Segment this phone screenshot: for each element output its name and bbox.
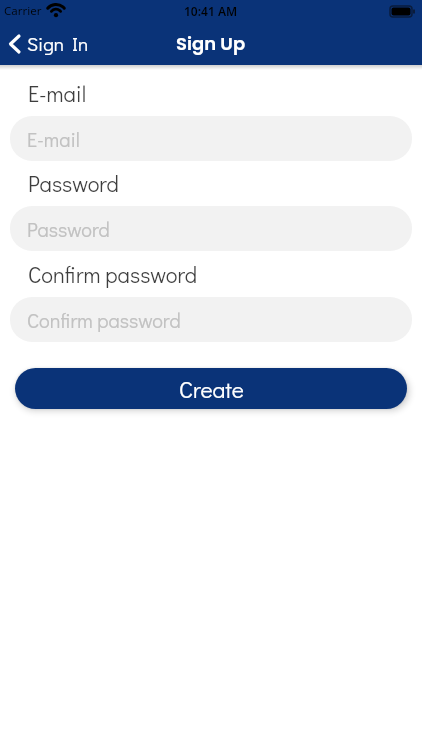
button[interactable]: Password (10, 206, 412, 251)
staticText: Confirm password (27, 307, 181, 333)
button[interactable]: Confirm password (10, 297, 412, 342)
staticText: Password (28, 169, 119, 198)
staticText: Create (179, 374, 244, 404)
staticText: Sign In (27, 31, 89, 56)
staticText: E-mail (27, 126, 80, 152)
staticText: Password (27, 216, 110, 242)
staticText: E-mail (28, 79, 87, 108)
staticText: 10:41 AM (184, 3, 238, 19)
button[interactable]: Create (15, 368, 407, 409)
button[interactable]: E-mail (10, 116, 412, 161)
button[interactable]: Sign In (8, 31, 89, 56)
staticText: Sign Up (176, 31, 246, 56)
staticText: Carrier (4, 3, 42, 19)
staticText: Confirm password (28, 260, 197, 289)
